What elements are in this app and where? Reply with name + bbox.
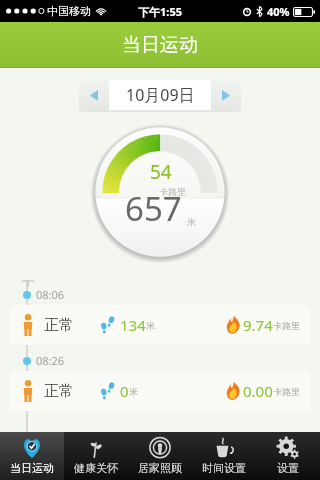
staticText: 米 xyxy=(129,386,138,397)
staticText: 卡路里 xyxy=(159,186,186,197)
button[interactable]: 正常 xyxy=(10,305,310,345)
button[interactable]: 设置 xyxy=(256,432,320,480)
button[interactable]: 居家照顾 xyxy=(128,432,192,480)
staticText: 08:26 xyxy=(36,353,65,368)
button[interactable]: 正常 xyxy=(10,371,310,411)
staticText: 卡路里 xyxy=(273,386,300,397)
staticText: 08:06 xyxy=(36,287,65,302)
staticText: 当日运动 xyxy=(122,33,198,57)
button[interactable]: 10月09日 xyxy=(109,80,211,110)
staticText: 米 xyxy=(146,320,155,331)
staticText: 9.74 xyxy=(243,315,273,335)
staticText: 10月09日 xyxy=(126,84,195,106)
button[interactable]: 时间设置 xyxy=(192,432,256,480)
button[interactable]: 当日运动 xyxy=(0,432,64,480)
staticText: 健康关怀 xyxy=(74,461,118,475)
staticText: 时间设置 xyxy=(202,461,246,475)
staticText: 0 xyxy=(120,381,129,401)
staticText: 正常 xyxy=(44,382,74,401)
staticText: 134 xyxy=(120,315,146,335)
staticText: 40% xyxy=(267,4,290,19)
staticText: 当日运动 xyxy=(10,461,54,475)
button[interactable]: 健康关怀 xyxy=(64,432,128,480)
staticText: 下午1:55 xyxy=(138,4,182,19)
staticText: 657 xyxy=(125,186,182,231)
button[interactable]: Next day xyxy=(211,78,241,112)
staticText: 居家照顾 xyxy=(138,461,182,475)
staticText: 中国移动 xyxy=(47,4,91,18)
staticText: 正常 xyxy=(44,316,74,335)
staticText: 米 xyxy=(187,216,196,227)
staticText: 0.00 xyxy=(243,381,273,401)
staticText: 设置 xyxy=(277,461,299,475)
staticText: 54 xyxy=(150,159,172,185)
staticText: 卡路里 xyxy=(273,320,300,331)
button[interactable]: Previous day xyxy=(79,78,109,112)
